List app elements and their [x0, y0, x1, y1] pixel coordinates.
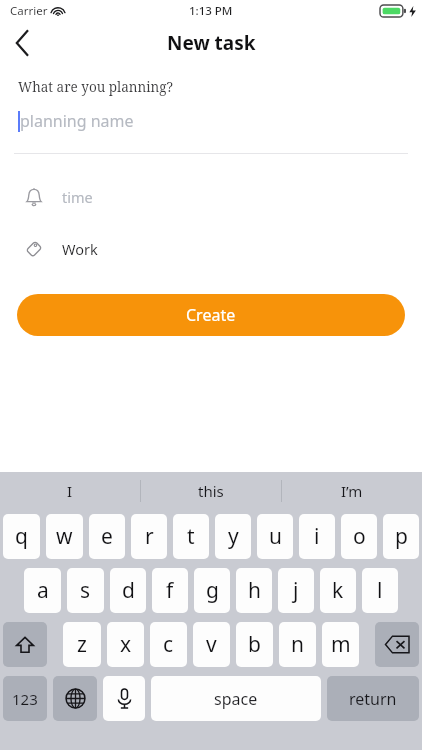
staticText: o	[353, 522, 366, 551]
staticText: this	[198, 481, 224, 501]
button[interactable]: i	[299, 514, 335, 559]
staticText: t	[187, 522, 195, 551]
button[interactable]: o	[341, 514, 377, 559]
staticText: space	[214, 688, 258, 710]
button[interactable]: I’m	[282, 472, 422, 510]
button[interactable]: Dictate	[103, 676, 145, 721]
staticText: z	[77, 630, 87, 659]
staticText: x	[120, 630, 132, 659]
staticText: c	[163, 630, 174, 659]
staticText: j	[293, 576, 299, 605]
button[interactable]: x	[107, 622, 144, 667]
staticText: i	[314, 522, 320, 551]
staticText: a	[37, 576, 49, 605]
staticText: planning name	[20, 110, 134, 132]
button[interactable]: u	[257, 514, 293, 559]
staticText: Create	[186, 304, 236, 326]
button[interactable]: j	[278, 568, 314, 613]
button[interactable]: t	[173, 514, 209, 559]
button[interactable]: h	[236, 568, 272, 613]
button[interactable]: Back	[0, 22, 44, 64]
button[interactable]: this	[141, 472, 281, 510]
button[interactable]: w	[46, 514, 83, 559]
button[interactable]: a	[24, 568, 61, 613]
staticText: h	[248, 576, 261, 605]
button[interactable]: I	[0, 472, 140, 510]
button[interactable]: e	[89, 514, 125, 559]
button[interactable]: n	[279, 622, 316, 667]
staticText: q	[15, 522, 28, 551]
button[interactable]: z	[63, 622, 101, 667]
staticText: 123	[12, 689, 38, 709]
button[interactable]: 123	[3, 676, 47, 721]
button[interactable]: space	[151, 676, 321, 721]
staticText: y	[228, 522, 239, 551]
staticText: I’m	[341, 481, 363, 501]
button[interactable]: l	[362, 568, 398, 613]
button[interactable]: time	[0, 180, 422, 214]
button[interactable]: y	[215, 514, 251, 559]
button[interactable]: p	[383, 514, 419, 559]
staticText: k	[332, 576, 344, 605]
staticText: g	[206, 576, 219, 605]
staticText: d	[122, 576, 135, 605]
button[interactable]: v	[193, 622, 230, 667]
button[interactable]: Create	[17, 294, 405, 336]
button[interactable]: d	[110, 568, 146, 613]
staticText: I	[67, 481, 73, 501]
button[interactable]: k	[320, 568, 356, 613]
button[interactable]: Shift	[3, 622, 47, 667]
staticText: s	[80, 576, 91, 605]
staticText: Carrier	[10, 3, 48, 19]
button[interactable]: m	[322, 622, 359, 667]
staticText: n	[291, 630, 304, 659]
button[interactable]: s	[67, 568, 104, 613]
staticText: b	[248, 630, 261, 659]
button[interactable]: r	[131, 514, 167, 559]
staticText: time	[62, 187, 93, 207]
staticText: v	[206, 630, 217, 659]
button[interactable]: c	[150, 622, 187, 667]
staticText: f	[166, 576, 174, 605]
staticText: l	[377, 576, 383, 605]
staticText: 1:13 PM	[189, 3, 233, 19]
button[interactable]: g	[194, 568, 230, 613]
staticText: e	[101, 522, 113, 551]
staticText: u	[269, 522, 282, 551]
staticText: m	[331, 630, 351, 659]
button[interactable]: q	[3, 514, 40, 559]
button[interactable]: return	[327, 676, 419, 721]
staticText: return	[349, 688, 397, 710]
staticText: w	[56, 522, 73, 551]
button[interactable]: Work	[0, 232, 422, 266]
staticText: What are you planning?	[18, 78, 173, 96]
button[interactable]: b	[236, 622, 273, 667]
staticText: Work	[62, 239, 98, 259]
button[interactable]: f	[152, 568, 188, 613]
staticText: p	[395, 522, 408, 551]
staticText: r	[145, 522, 154, 551]
button[interactable]: planning name	[0, 110, 422, 144]
staticText: New task	[167, 30, 256, 56]
button[interactable]: Backspace	[375, 622, 419, 667]
button[interactable]: Switch keyboard	[53, 676, 97, 721]
